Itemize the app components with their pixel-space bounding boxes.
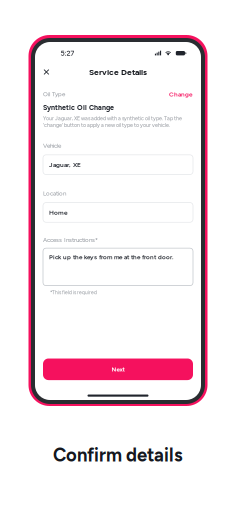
- button[interactable]: Close: [40, 65, 53, 79]
- staticText: Location: [43, 190, 66, 197]
- staticText: *This field is required: [50, 290, 97, 295]
- button[interactable]: Jaguar, XE: [43, 155, 193, 174]
- staticText: Service Details: [89, 67, 147, 77]
- staticText: 5:27: [60, 49, 74, 57]
- staticText: Your Jaguar, XE was added with a synthet…: [43, 115, 182, 122]
- staticText: Access Instructions*: [43, 236, 98, 243]
- staticText: 'change' button to apply a new oil type …: [43, 122, 170, 128]
- staticText: Home: [49, 208, 68, 216]
- staticText: Synthetic Oil Change: [43, 103, 114, 112]
- staticText: Jaguar, XE: [49, 161, 81, 168]
- staticText: Confirm details: [53, 444, 183, 466]
- staticText: Next: [111, 366, 124, 373]
- button[interactable]: Change: [169, 90, 193, 98]
- button[interactable]: Home: [43, 203, 193, 222]
- staticText: Change: [169, 90, 193, 98]
- staticText: Pick up the keys from me at the front do…: [49, 253, 173, 261]
- staticText: Oil Type: [43, 90, 65, 98]
- button[interactable]: Pick up the keys from me at the front do…: [43, 248, 193, 286]
- button[interactable]: Next: [43, 358, 193, 380]
- staticText: Vehicle: [43, 142, 61, 149]
